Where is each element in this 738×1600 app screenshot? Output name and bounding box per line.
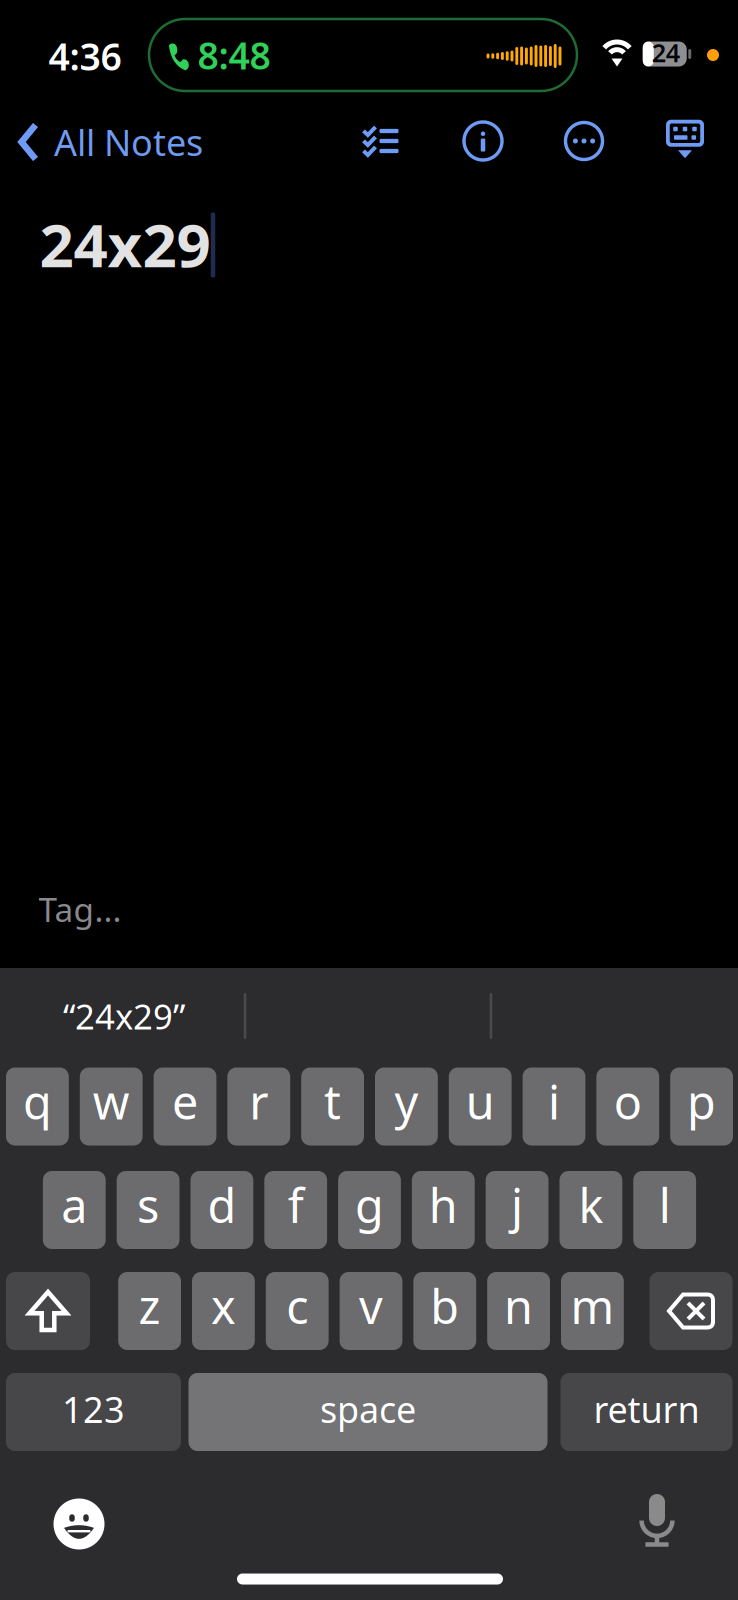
button[interactable]: z — [118, 1272, 181, 1350]
staticText: a — [61, 1174, 87, 1236]
staticText: v — [359, 1275, 383, 1337]
staticText: w — [93, 1070, 130, 1132]
button[interactable]: x — [192, 1272, 255, 1350]
staticText: space — [320, 1385, 416, 1433]
staticText: s — [137, 1174, 159, 1236]
staticText: p — [687, 1070, 716, 1132]
button[interactable]: All Notes — [19, 111, 207, 173]
staticText: o — [614, 1070, 642, 1132]
staticText: m — [570, 1275, 614, 1337]
staticText: c — [286, 1275, 308, 1337]
button[interactable]: c — [266, 1272, 329, 1350]
staticText: 4:36 — [48, 31, 121, 81]
button[interactable]: b — [413, 1272, 476, 1350]
button[interactable]: u — [449, 1067, 512, 1145]
button[interactable]: j — [486, 1171, 548, 1249]
button[interactable]: w — [80, 1067, 143, 1145]
button[interactable]: f — [264, 1171, 327, 1249]
button[interactable]: m — [561, 1272, 624, 1350]
button[interactable]: More — [556, 113, 612, 169]
staticText: 123 — [62, 1385, 125, 1433]
button[interactable]: r — [227, 1067, 290, 1145]
staticText: l — [659, 1174, 671, 1236]
staticText: t — [324, 1070, 341, 1132]
button[interactable]: v — [340, 1272, 402, 1350]
button[interactable]: Delete — [649, 1272, 732, 1350]
staticText: b — [430, 1275, 459, 1337]
staticText: e — [172, 1070, 198, 1132]
button[interactable]: q — [6, 1067, 69, 1145]
staticText: return — [593, 1385, 699, 1433]
button[interactable]: s — [117, 1171, 179, 1249]
button[interactable]: l — [633, 1171, 696, 1249]
staticText: x — [211, 1275, 236, 1337]
staticText: y — [394, 1070, 418, 1132]
staticText: k — [578, 1174, 603, 1236]
staticText: z — [139, 1275, 161, 1337]
button[interactable]: o — [596, 1067, 659, 1145]
staticText: All Notes — [54, 118, 203, 166]
staticText: n — [504, 1275, 533, 1337]
staticText: “24x29” — [63, 993, 185, 1039]
button[interactable]: h — [412, 1171, 475, 1249]
staticText: 8:48 — [197, 30, 270, 80]
button[interactable]: k — [559, 1171, 622, 1249]
button[interactable]: y — [375, 1067, 438, 1145]
button[interactable]: i — [523, 1067, 585, 1145]
staticText: 24 — [652, 36, 680, 69]
button[interactable]: Hide keyboard — [657, 111, 713, 167]
staticText: h — [429, 1174, 458, 1236]
button[interactable]: space — [188, 1373, 547, 1451]
staticText: f — [288, 1174, 304, 1236]
staticText: g — [355, 1174, 384, 1236]
button[interactable]: d — [190, 1171, 253, 1249]
button[interactable]: Dictate — [627, 1492, 687, 1552]
button[interactable]: p — [670, 1067, 733, 1145]
button[interactable]: 123 — [6, 1373, 181, 1451]
button[interactable]: Info — [455, 113, 511, 169]
button[interactable]: n — [487, 1272, 550, 1350]
staticText: r — [249, 1070, 268, 1132]
staticText: Tag... — [38, 887, 121, 931]
staticText: q — [23, 1070, 52, 1132]
button[interactable]: t — [301, 1067, 364, 1145]
button[interactable]: Checklist — [352, 113, 410, 169]
button[interactable]: “24x29” — [49, 984, 199, 1048]
staticText: d — [207, 1174, 236, 1236]
button[interactable]: Shift — [6, 1272, 90, 1350]
staticText: i — [548, 1070, 560, 1132]
staticText: j — [511, 1174, 523, 1236]
staticText: 24x29 — [39, 204, 210, 284]
button[interactable]: e — [154, 1067, 216, 1145]
staticText: u — [466, 1070, 495, 1132]
button[interactable]: g — [338, 1171, 401, 1249]
button[interactable]: a — [43, 1171, 106, 1249]
button[interactable]: Emoji — [48, 1493, 110, 1555]
button[interactable]: return — [560, 1373, 732, 1451]
